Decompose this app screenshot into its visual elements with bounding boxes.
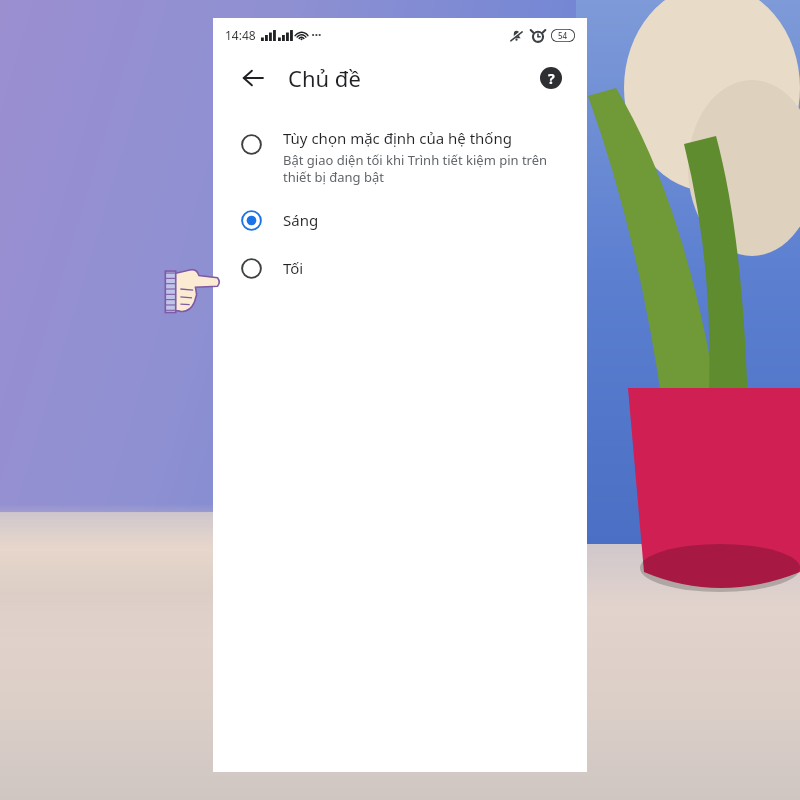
staticText: Sáng (283, 210, 319, 230)
button[interactable]: Sáng (213, 196, 587, 244)
staticText: Tùy chọn mặc định của hệ thống (283, 128, 512, 148)
staticText: 54 (558, 30, 568, 41)
button[interactable]: Help (531, 58, 571, 98)
staticText: Tối (283, 258, 304, 278)
staticText: 14:48 (225, 27, 256, 43)
staticText: ? (548, 69, 555, 88)
staticText: Bật giao diện tối khi Trình tiết kiệm pi… (283, 151, 548, 186)
button[interactable]: Tùy chọn mặc định của hệ thống (213, 118, 587, 196)
button[interactable]: Tối (213, 244, 587, 292)
button[interactable]: Back (231, 56, 275, 100)
staticText: Chủ đề (288, 63, 361, 93)
